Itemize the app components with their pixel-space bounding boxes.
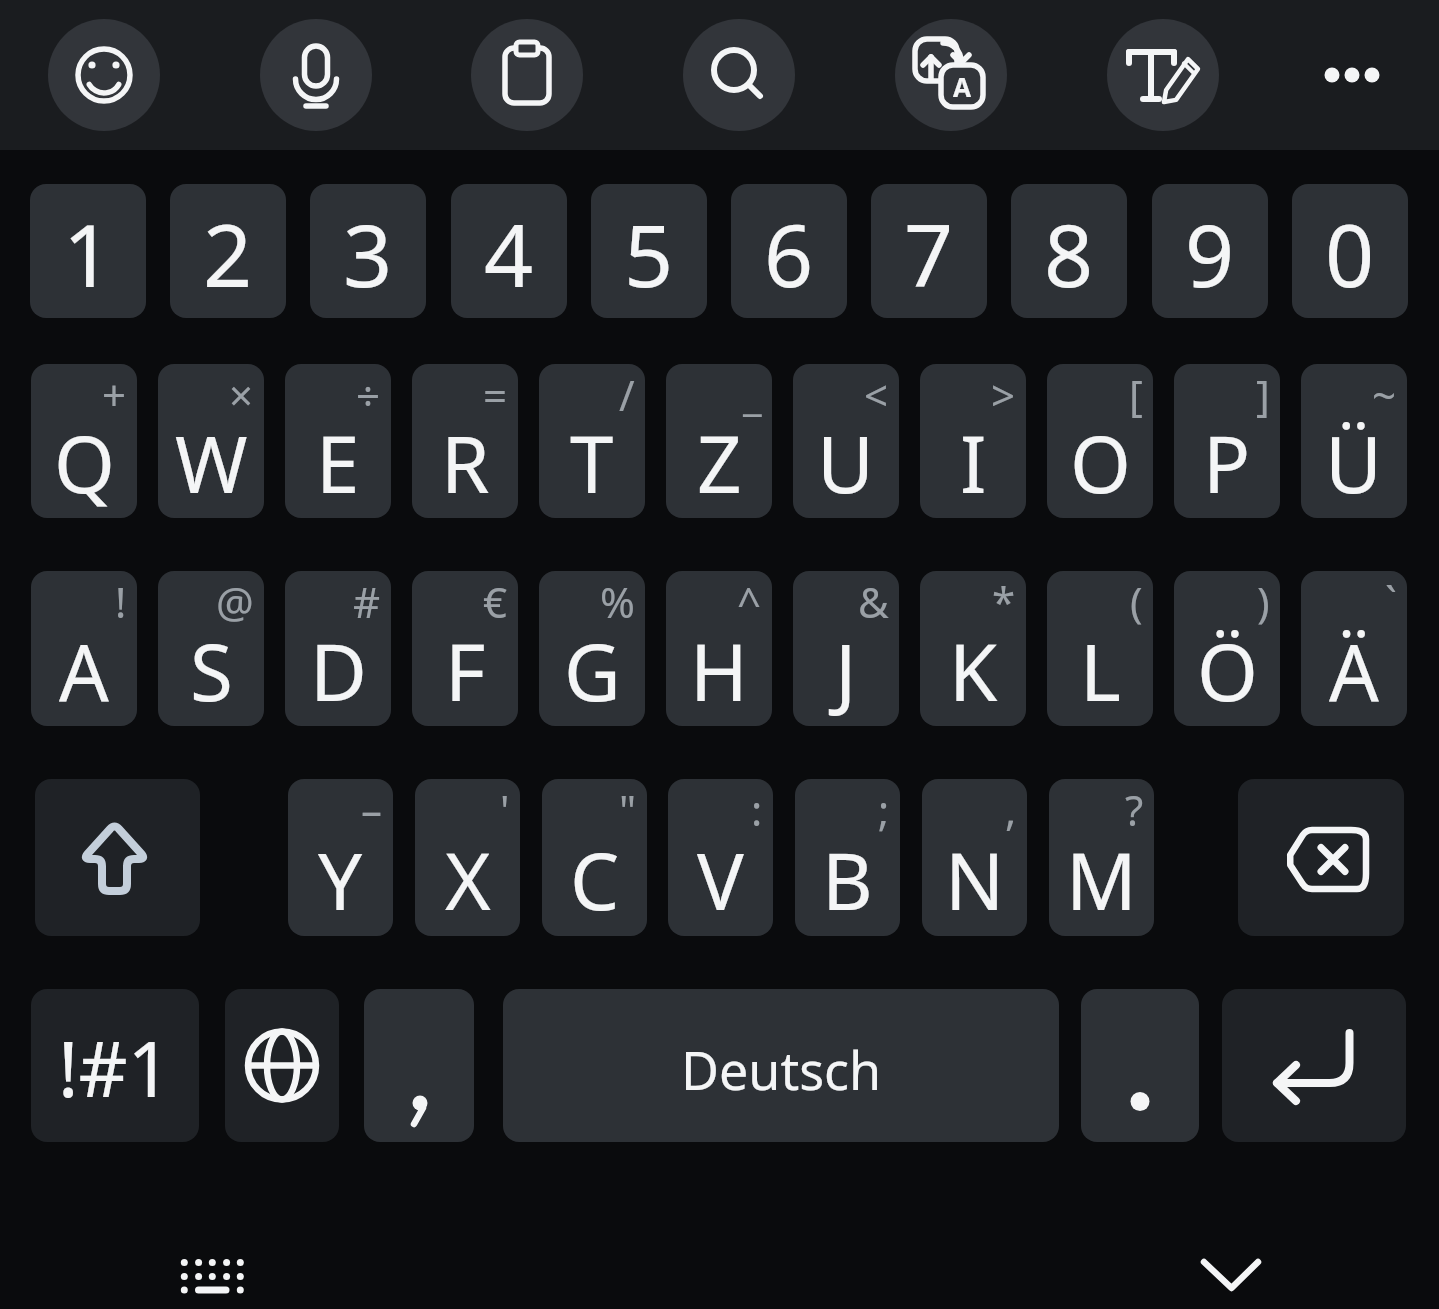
staticText: G — [564, 618, 621, 724]
button[interactable] — [1190, 1245, 1274, 1305]
staticText: X — [445, 827, 491, 933]
staticText: H — [690, 618, 748, 724]
staticText: 9 — [1185, 195, 1235, 312]
button[interactable]: N — [922, 779, 1027, 936]
button[interactable]: 6 — [731, 184, 847, 318]
button[interactable]: S — [158, 571, 264, 726]
staticText: € — [483, 573, 508, 630]
button[interactable]: J — [793, 571, 899, 726]
staticText: Z — [697, 410, 742, 516]
button[interactable]: C — [542, 779, 647, 936]
button[interactable] — [471, 19, 583, 131]
button[interactable]: 2 — [170, 184, 286, 318]
staticText: S — [190, 618, 233, 724]
button[interactable]: P — [1174, 364, 1280, 518]
button[interactable]: T — [539, 364, 645, 518]
staticText: E — [316, 410, 360, 516]
button[interactable]: R — [412, 364, 518, 518]
button[interactable]: Q — [31, 364, 137, 518]
staticText: ( — [1130, 573, 1143, 630]
staticText: 2 — [203, 195, 253, 312]
staticText: L — [1080, 618, 1121, 724]
button[interactable]: L — [1047, 571, 1153, 726]
button[interactable]: 3 — [310, 184, 426, 318]
staticText: > — [991, 366, 1016, 423]
staticText: O — [1070, 410, 1131, 516]
button[interactable]: F — [412, 571, 518, 726]
button[interactable]: 9 — [1152, 184, 1268, 318]
button[interactable] — [48, 19, 160, 131]
button[interactable]: !#1 — [31, 989, 199, 1142]
staticText: ] — [1256, 366, 1270, 423]
button[interactable]: 5 — [591, 184, 707, 318]
button[interactable] — [170, 1248, 254, 1308]
staticText: * — [992, 573, 1016, 630]
staticText: # — [353, 573, 381, 630]
staticText: 0 — [1325, 195, 1375, 312]
button[interactable]: E — [285, 364, 391, 518]
staticText: J — [835, 618, 857, 724]
button[interactable] — [1222, 989, 1406, 1142]
button[interactable] — [1107, 19, 1219, 131]
staticText: ) — [1257, 573, 1270, 630]
button[interactable] — [1081, 989, 1199, 1142]
button[interactable]: K — [920, 571, 1026, 726]
button[interactable]: Ö — [1174, 571, 1280, 726]
staticText: 5 — [624, 195, 674, 312]
button[interactable] — [35, 779, 200, 936]
staticText: N — [945, 827, 1005, 933]
staticText: / — [619, 366, 635, 423]
staticText: ^ — [737, 573, 762, 630]
staticText: !#1 — [58, 1016, 172, 1120]
staticText: M — [1066, 827, 1137, 933]
button[interactable]: 1 — [30, 184, 146, 318]
button[interactable]: A — [31, 571, 137, 726]
staticText: R — [441, 410, 490, 516]
button[interactable]: 8 — [1011, 184, 1127, 318]
button[interactable]: H — [666, 571, 772, 726]
button[interactable]: 0 — [1292, 184, 1408, 318]
button[interactable] — [1296, 19, 1408, 131]
button[interactable]: 7 — [871, 184, 987, 318]
button[interactable]: 4 — [451, 184, 567, 318]
button[interactable]: M — [1049, 779, 1154, 936]
button[interactable]: Z — [666, 364, 772, 518]
button[interactable]: I — [920, 364, 1026, 518]
staticText: B — [822, 827, 873, 933]
staticText: Ü — [1325, 410, 1383, 516]
staticText: @ — [216, 573, 254, 630]
staticText: 7 — [904, 195, 954, 312]
staticText: W — [175, 410, 248, 516]
button[interactable] — [364, 989, 474, 1142]
staticText: = — [483, 366, 508, 423]
staticText: _ — [743, 366, 762, 423]
button[interactable]: U — [793, 364, 899, 518]
staticText: ? — [1125, 781, 1144, 838]
button[interactable]: Ü — [1301, 364, 1407, 518]
button[interactable]: A — [895, 19, 1007, 131]
button[interactable] — [260, 19, 372, 131]
button[interactable] — [683, 19, 795, 131]
button[interactable]: X — [415, 779, 520, 936]
staticText: F — [445, 618, 486, 724]
staticText: A — [59, 618, 109, 724]
button[interactable]: Y — [288, 779, 393, 936]
staticText: % — [600, 573, 635, 630]
staticText: I — [960, 410, 987, 516]
staticText: A — [953, 69, 971, 104]
button[interactable]: G — [539, 571, 645, 726]
button[interactable]: Deutsch — [503, 989, 1059, 1142]
button[interactable]: O — [1047, 364, 1153, 518]
button[interactable]: D — [285, 571, 391, 726]
button[interactable] — [225, 989, 339, 1142]
staticText: 1 — [63, 195, 113, 312]
button[interactable]: B — [795, 779, 900, 936]
staticText: – — [361, 781, 383, 838]
button[interactable]: V — [668, 779, 773, 936]
staticText: ; — [878, 781, 890, 838]
staticText: Q — [54, 410, 115, 516]
button[interactable]: W — [158, 364, 264, 518]
button[interactable] — [1238, 779, 1404, 936]
button[interactable]: Ä — [1301, 571, 1407, 726]
staticText: K — [949, 618, 998, 724]
